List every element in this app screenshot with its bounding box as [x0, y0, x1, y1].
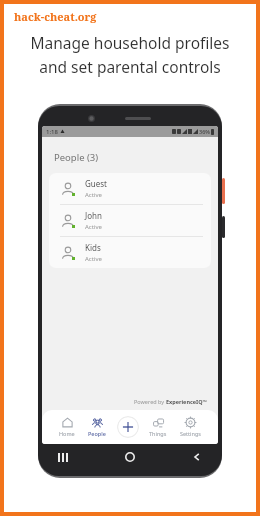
button[interactable]: Guest: [49, 173, 211, 204]
button[interactable]: Things: [147, 414, 169, 440]
other: Back: [192, 452, 202, 462]
staticText: Manage household profiles: [30, 32, 230, 53]
staticText: Kids: [85, 242, 101, 253]
staticText: 36%: [199, 128, 210, 135]
button[interactable]: Settings: [178, 414, 203, 440]
staticText: Guest: [85, 178, 107, 189]
staticText: People: [88, 430, 106, 437]
staticText: 1:18: [46, 128, 58, 136]
button[interactable]: Home: [57, 414, 77, 440]
staticText: Things: [149, 430, 167, 437]
staticText: Settings: [180, 430, 201, 437]
button[interactable]: Kids: [49, 237, 211, 268]
other: Home: [125, 452, 135, 462]
staticText: Active: [85, 191, 102, 199]
staticText: John: [85, 210, 102, 221]
other: Recents: [58, 453, 68, 462]
staticText: and set parental controls: [39, 56, 221, 77]
staticText: Active: [85, 223, 102, 231]
button[interactable]: John: [49, 205, 211, 236]
staticText: ExperienceIQ™: [166, 398, 207, 405]
staticText: Active: [85, 255, 102, 263]
button[interactable]: Add: [117, 416, 139, 438]
staticText: Home: [59, 430, 75, 437]
button[interactable]: People: [86, 414, 108, 440]
staticText: hack-cheat.org: [14, 9, 97, 24]
staticText: Powered by: [134, 398, 166, 405]
staticText: People (3): [54, 151, 99, 164]
